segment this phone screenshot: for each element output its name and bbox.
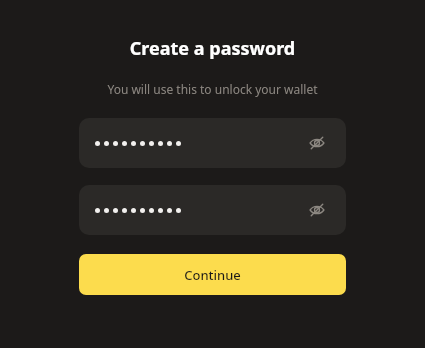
button[interactable]: Show password — [79, 118, 346, 168]
staticText: Create a password — [79, 36, 346, 61]
button[interactable]: Show password — [304, 130, 330, 156]
button[interactable]: Continue — [79, 254, 346, 295]
button[interactable]: Show password — [304, 197, 330, 223]
button[interactable]: Show password — [79, 185, 346, 235]
staticText: Continue — [184, 266, 241, 284]
staticText: You will use this to unlock your wallet — [79, 81, 346, 97]
